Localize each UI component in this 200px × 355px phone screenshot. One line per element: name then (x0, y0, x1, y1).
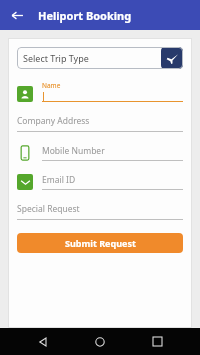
staticText: Email ID (42, 174, 76, 186)
button[interactable]: Submit Request (17, 233, 183, 253)
button[interactable]: Mobile Number (17, 145, 183, 161)
button[interactable]: Home (86, 328, 114, 355)
staticText: Heliport Booking (38, 8, 132, 23)
button[interactable]: Special Request (17, 203, 183, 220)
button[interactable]: Name (17, 81, 183, 102)
button[interactable]: Select Trip Type (17, 47, 183, 69)
button[interactable]: Back (29, 328, 57, 355)
button[interactable]: Recent apps (143, 328, 171, 355)
staticText: Select Trip Type (23, 52, 89, 64)
button[interactable]: Email ID (17, 174, 183, 190)
staticText: Company Address (17, 115, 90, 127)
staticText: Special Request (17, 203, 80, 215)
button[interactable]: Company Address (17, 115, 183, 132)
staticText: Name (42, 81, 61, 90)
staticText: Submit Request (65, 237, 136, 249)
staticText: Mobile Number (42, 145, 105, 157)
button[interactable]: Back (6, 4, 28, 26)
